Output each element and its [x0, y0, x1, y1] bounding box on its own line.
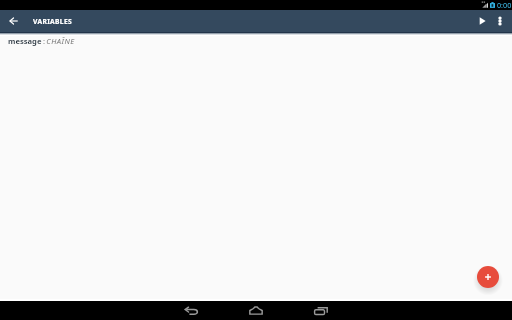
button[interactable]: Run: [475, 10, 489, 32]
button[interactable]: Back: [181, 301, 201, 320]
button[interactable]: Recent apps: [311, 301, 331, 320]
button[interactable]: Add: [477, 266, 499, 288]
staticText: message : CHAÎNE: [8, 36, 75, 46]
button[interactable]: Home: [246, 301, 266, 320]
staticText: VARIABLES: [33, 17, 73, 26]
staticText: 0:00: [497, 0, 512, 10]
button[interactable]: Back: [0, 10, 27, 32]
button[interactable]: More options: [489, 10, 511, 32]
button[interactable]: message : CHAÎNE: [0, 33, 512, 49]
